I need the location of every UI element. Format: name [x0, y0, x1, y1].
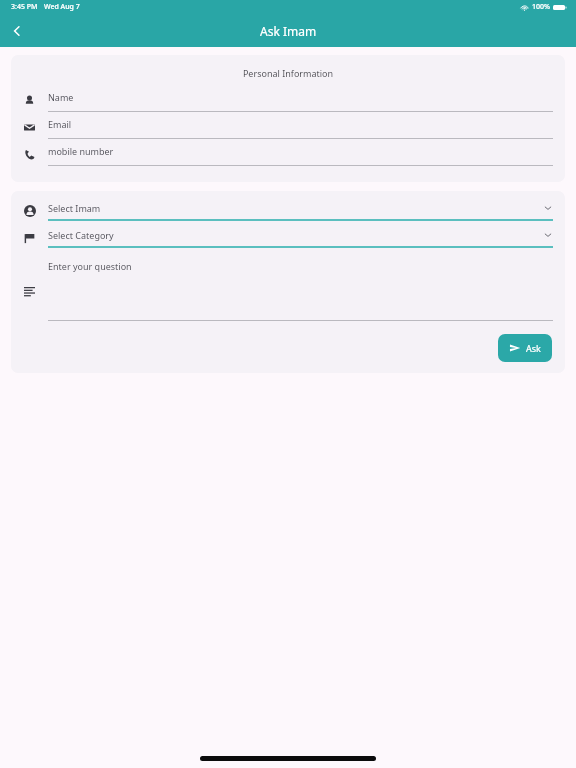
staticText: Wed Aug 7	[44, 2, 80, 12]
button[interactable]: Name	[11, 91, 565, 118]
staticText: Email	[48, 118, 72, 130]
staticText: Ask	[526, 342, 541, 354]
staticText: 3:45 PM	[11, 2, 38, 12]
staticText: Personal Information	[11, 67, 565, 79]
button[interactable]: Ask	[498, 334, 552, 362]
button[interactable]: Select Imam	[11, 202, 565, 229]
button[interactable]: Select Category	[11, 229, 565, 256]
button[interactable]: Email	[11, 118, 565, 145]
button[interactable]: Back	[0, 14, 34, 47]
staticText: Ask Imam	[260, 23, 317, 39]
staticText: Enter your question	[48, 260, 132, 272]
staticText: Name	[48, 91, 74, 103]
staticText: mobile number	[48, 145, 114, 157]
button[interactable]	[11, 284, 565, 321]
button[interactable]: mobile number	[11, 145, 565, 172]
staticText: 100%	[532, 2, 550, 12]
staticText: Select Imam	[48, 202, 543, 214]
staticText: Select Category	[48, 229, 543, 241]
